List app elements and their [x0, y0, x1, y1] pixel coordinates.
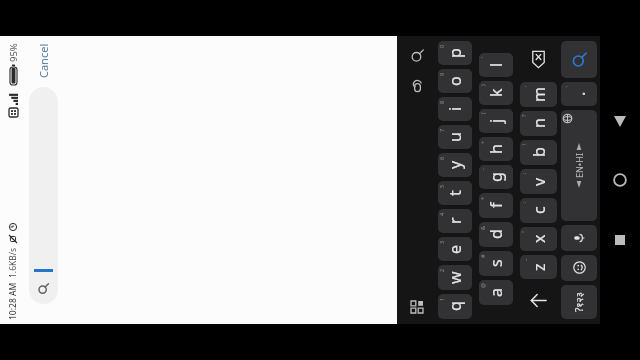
staticText: o: [444, 76, 466, 86]
button[interactable]: [29, 87, 58, 304]
staticText: 1: [438, 297, 445, 301]
button[interactable]: w: [438, 265, 472, 290]
staticText: 7: [438, 128, 445, 132]
button[interactable]: .: [561, 82, 597, 106]
staticText: 10:28 AM: [7, 282, 19, 320]
button[interactable]: r: [438, 209, 472, 233]
staticText: (: [479, 112, 486, 114]
staticText: ": [520, 230, 527, 233]
staticText: l: [485, 62, 507, 67]
staticText: c: [528, 206, 550, 214]
button[interactable]: h: [479, 137, 513, 161]
staticText: z: [528, 263, 550, 271]
staticText: n: [528, 118, 550, 128]
button[interactable]: ?१२३: [561, 285, 597, 319]
button[interactable]: Cancel: [28, 42, 59, 79]
staticText: p: [444, 48, 466, 58]
staticText: s: [485, 259, 507, 267]
staticText: j: [485, 118, 507, 123]
button[interactable]: n: [520, 111, 557, 136]
staticText: ,: [520, 85, 527, 87]
staticText: 9: [438, 72, 445, 76]
button[interactable]: g: [479, 165, 513, 189]
button[interactable]: m: [520, 82, 557, 107]
staticText: ?१२३: [572, 292, 586, 312]
button[interactable]: l: [479, 53, 513, 77]
staticText: &: [479, 225, 486, 230]
staticText: *: [479, 196, 486, 200]
staticText: f: [485, 202, 507, 208]
staticText: :: [520, 201, 527, 203]
button[interactable]: o: [438, 69, 472, 93]
staticText: 2: [438, 268, 445, 272]
staticText: t: [444, 190, 466, 196]
button[interactable]: s: [479, 251, 513, 276]
staticText: Cancel: [36, 43, 51, 78]
staticText: _: [520, 258, 527, 261]
staticText: 8: [438, 100, 445, 104]
staticText: v: [528, 177, 550, 186]
staticText: ': [479, 56, 486, 58]
staticText: @: [479, 283, 486, 288]
button[interactable]: q: [438, 294, 472, 319]
staticText: ?: [520, 114, 527, 117]
button[interactable]: a: [479, 280, 513, 305]
staticText: r: [444, 217, 466, 224]
button[interactable]: y: [438, 153, 472, 177]
button[interactable]: d: [479, 222, 513, 247]
staticText: b: [528, 147, 550, 157]
staticText: q: [444, 301, 466, 311]
button[interactable]: Search: [406, 45, 428, 67]
button[interactable]: f: [479, 193, 513, 218]
staticText: u: [444, 132, 466, 142]
staticText: ,: [561, 85, 568, 87]
staticText: x: [528, 234, 550, 243]
button[interactable]: Clipboard: [406, 76, 428, 98]
button[interactable]: Shift: [520, 283, 557, 319]
button[interactable]: x: [520, 227, 557, 251]
button[interactable]: Voice input: [561, 225, 597, 251]
button[interactable]: Backspace: [520, 41, 557, 78]
button[interactable]: Home: [600, 156, 640, 204]
staticText: w: [444, 271, 466, 284]
button[interactable]: Back: [600, 98, 640, 146]
staticText: 4: [438, 212, 445, 216]
button[interactable]: b: [520, 140, 557, 165]
button[interactable]: Emoji: [561, 255, 597, 281]
button[interactable]: Sticker and GIF: [406, 296, 428, 318]
staticText: k: [485, 88, 507, 97]
button[interactable]: z: [520, 255, 557, 279]
button[interactable]: EN•HI: [561, 110, 597, 221]
button[interactable]: j: [479, 109, 513, 133]
staticText: 5: [438, 184, 445, 188]
staticText: a: [485, 288, 507, 297]
staticText: #: [479, 254, 486, 258]
button[interactable]: u: [438, 125, 472, 149]
staticText: .: [568, 91, 590, 96]
button[interactable]: i: [438, 97, 472, 121]
staticText: +: [479, 140, 486, 144]
staticText: ;: [520, 172, 527, 174]
button[interactable]: Search: [561, 41, 597, 78]
button[interactable]: e: [438, 237, 472, 261]
button[interactable]: k: [479, 81, 513, 105]
button[interactable]: t: [438, 181, 472, 205]
staticText: EN•HI: [573, 153, 585, 178]
staticText: !: [520, 143, 527, 145]
staticText: ): [479, 84, 486, 86]
button[interactable]: p: [438, 41, 472, 65]
button[interactable]: c: [520, 198, 557, 223]
staticText: d: [485, 229, 507, 239]
staticText: 0: [438, 44, 445, 48]
staticText: e: [444, 244, 466, 254]
staticText: h: [485, 144, 507, 154]
staticText: y: [444, 160, 466, 169]
staticText: 95%: [7, 43, 20, 62]
staticText: -: [479, 168, 486, 170]
staticText: 1.6KB/s: [7, 247, 19, 278]
staticText: 3: [438, 240, 445, 244]
staticText: m: [528, 87, 550, 102]
button[interactable]: v: [520, 169, 557, 194]
button[interactable]: Recent apps: [600, 216, 640, 264]
staticText: i: [444, 106, 466, 111]
